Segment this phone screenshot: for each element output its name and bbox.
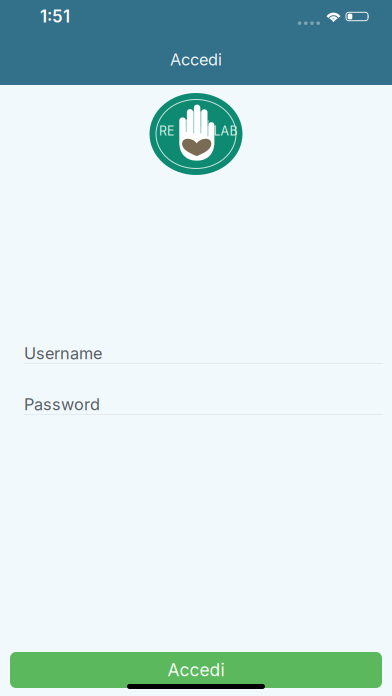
staticText: Username	[24, 344, 102, 363]
staticText: Accedi	[170, 50, 222, 69]
staticText: LAB	[213, 124, 237, 138]
staticText: Password	[24, 395, 100, 414]
button[interactable]: Username	[24, 339, 383, 364]
staticText: RE	[159, 124, 174, 138]
button[interactable]: Accedi	[10, 652, 382, 688]
staticText: Accedi	[167, 660, 224, 680]
button[interactable]: Password	[24, 390, 383, 415]
staticText: 1:51	[40, 7, 70, 26]
